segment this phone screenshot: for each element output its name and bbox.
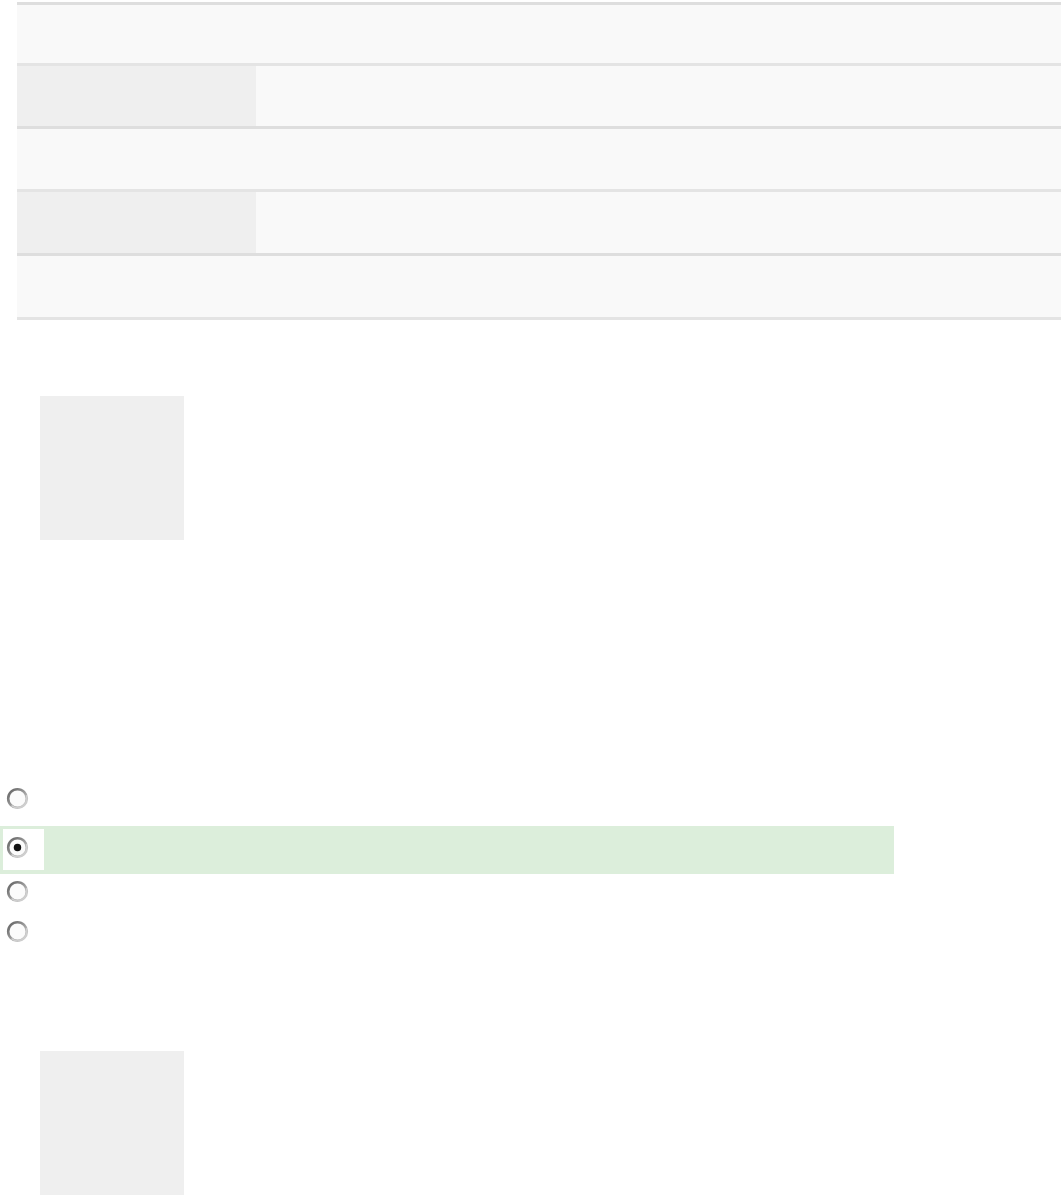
button[interactable] xyxy=(17,5,1061,66)
button[interactable]: Option 4 xyxy=(0,916,1061,956)
button[interactable]: Option 3 xyxy=(0,876,1061,916)
button[interactable] xyxy=(17,192,1061,256)
button[interactable]: Option 2 xyxy=(0,826,894,874)
button[interactable] xyxy=(17,256,1061,320)
button[interactable]: Option 1 xyxy=(0,783,1061,823)
button[interactable] xyxy=(17,66,1061,129)
button[interactable] xyxy=(17,129,1061,192)
